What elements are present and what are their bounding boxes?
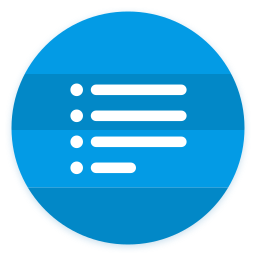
button[interactable]: Third item (70, 131, 187, 153)
button[interactable]: First item (70, 79, 187, 101)
button[interactable]: Fourth item (70, 157, 136, 179)
button[interactable]: Second item (70, 105, 187, 127)
